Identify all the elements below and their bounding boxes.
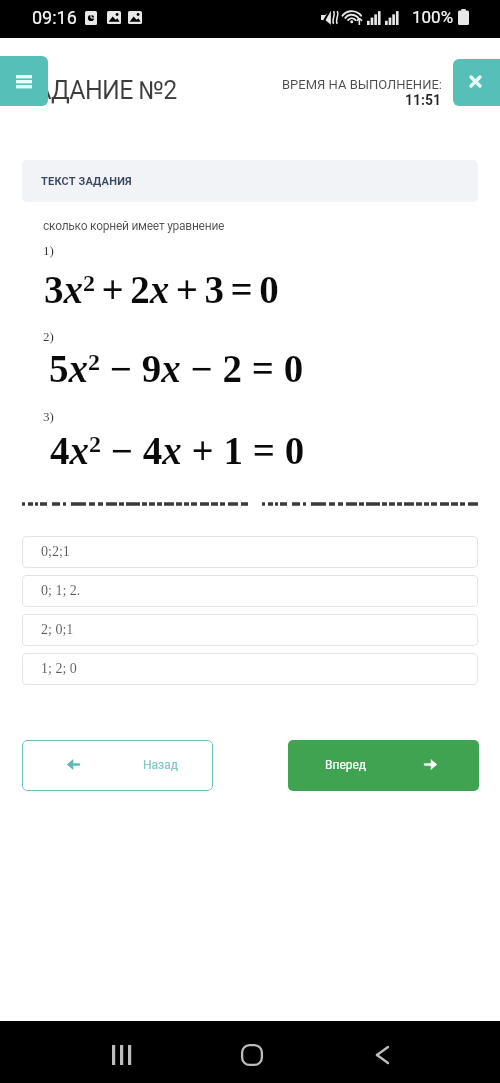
staticText: 09:16 xyxy=(32,7,77,28)
button[interactable]: Recent apps xyxy=(92,1027,152,1077)
staticText: 4x2 − 4x + 1 = 0 xyxy=(50,429,305,472)
button[interactable]: Home xyxy=(221,1027,283,1077)
staticText: 11:51 xyxy=(405,92,442,108)
button[interactable]: Back xyxy=(356,1027,410,1077)
staticText: 2; 0;1 xyxy=(41,622,74,638)
button[interactable]: Close xyxy=(453,59,500,106)
staticText: Вперед xyxy=(325,758,367,772)
staticText: 2) xyxy=(43,329,54,343)
staticText: ЗАДАНИЕ №2 xyxy=(21,76,177,105)
staticText: Назад xyxy=(143,758,178,772)
button[interactable]: 2; 0;1 xyxy=(22,614,478,646)
staticText: 100% xyxy=(412,7,454,27)
staticText: 5x2 − 9x − 2 = 0 xyxy=(49,347,304,390)
staticText: 1) xyxy=(43,243,54,257)
staticText: 3) xyxy=(43,409,54,423)
button[interactable]: 0;2;1 xyxy=(22,536,478,568)
staticText: сколько корней имеет уравнение xyxy=(43,219,225,233)
button[interactable]: 0; 1; 2. xyxy=(22,575,478,607)
staticText: ВРЕМЯ НА ВЫПОЛНЕНИЕ: xyxy=(282,77,442,92)
staticText: 3x2 + 2x + 3 = 0 xyxy=(44,268,279,311)
staticText: ТЕКСТ ЗАДАНИЯ xyxy=(41,175,132,188)
button[interactable]: Menu xyxy=(0,56,48,106)
staticText: 0; 1; 2. xyxy=(41,583,81,599)
staticText: 0;2;1 xyxy=(41,544,70,560)
staticText: 1; 2; 0 xyxy=(41,661,77,677)
button[interactable]: Назад xyxy=(22,740,213,791)
button[interactable]: Вперед xyxy=(288,740,479,791)
button[interactable]: 1; 2; 0 xyxy=(22,653,478,685)
